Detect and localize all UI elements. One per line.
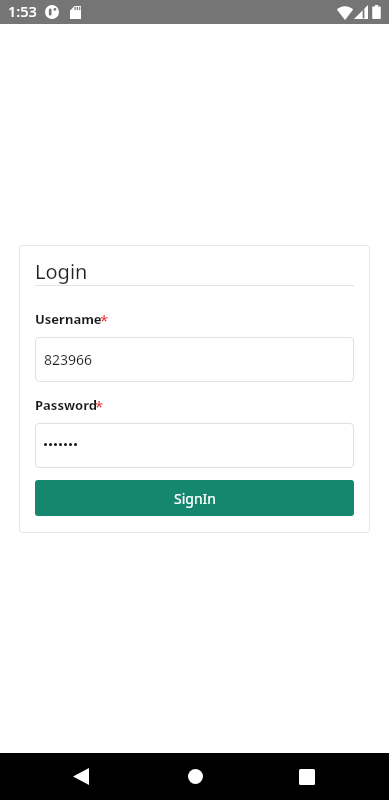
button[interactable]: Recent apps	[283, 753, 331, 800]
button[interactable]: Password field	[35, 423, 354, 468]
staticText: Username	[35, 310, 102, 328]
staticText: *	[95, 396, 104, 414]
staticText: *	[100, 310, 109, 328]
staticText: Login	[35, 258, 88, 285]
button[interactable]: Back	[57, 753, 105, 800]
staticText: Password	[35, 396, 97, 414]
button[interactable]: Username field	[35, 337, 354, 382]
staticText: 1:53	[8, 1, 37, 21]
button[interactable]: Home	[171, 753, 219, 800]
button[interactable]: SignIn	[35, 480, 354, 516]
staticText: 823966	[44, 350, 93, 369]
staticText: SignIn	[174, 489, 216, 508]
